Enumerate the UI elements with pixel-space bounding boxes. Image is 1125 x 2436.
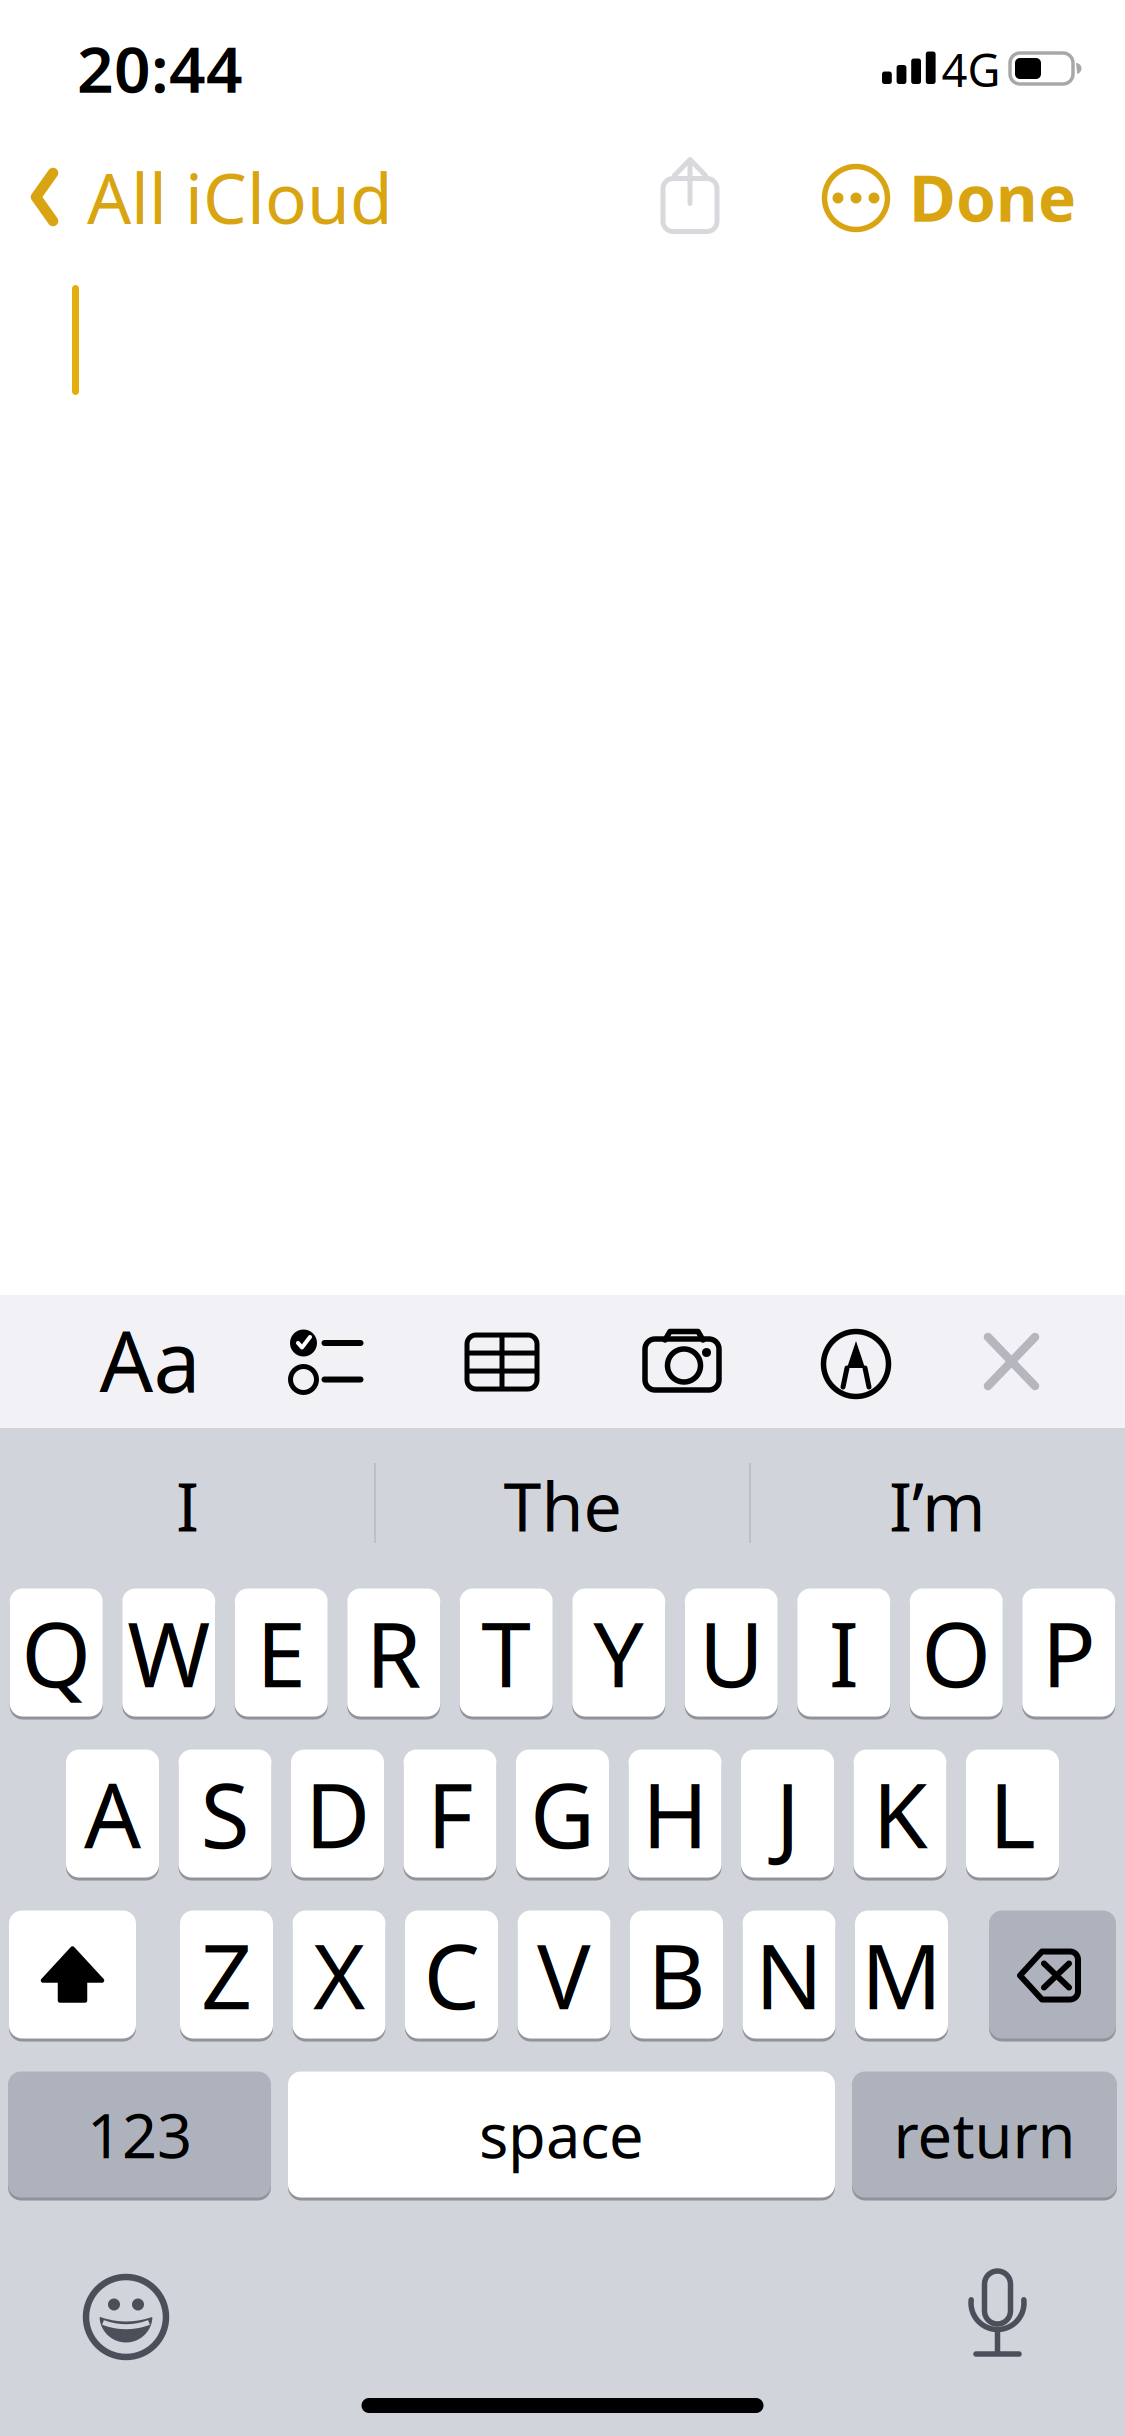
staticText: 123 (87, 2094, 192, 2175)
staticText: N (755, 1915, 823, 2034)
button[interactable]: Format (90, 1305, 210, 1415)
button[interactable]: P (1022, 1587, 1115, 1718)
staticText: L (989, 1754, 1036, 1873)
button[interactable]: A (66, 1748, 159, 1879)
button[interactable]: W (122, 1587, 215, 1718)
button[interactable]: More (821, 163, 891, 233)
staticText: M (861, 1915, 942, 2034)
button[interactable]: O (910, 1587, 1003, 1718)
staticText: V (537, 1915, 591, 2034)
button[interactable]: The (377, 1430, 747, 1580)
button[interactable]: I’m (752, 1430, 1122, 1580)
button[interactable]: Checklist (287, 1324, 375, 1398)
button[interactable]: Numbers (8, 2070, 271, 2199)
button[interactable]: Emoji (76, 2267, 176, 2367)
button[interactable]: J (741, 1748, 834, 1879)
staticText: space (479, 2094, 644, 2175)
staticText: U (699, 1593, 764, 1712)
button[interactable]: C (405, 1909, 498, 2040)
staticText: R (366, 1593, 422, 1712)
staticText: The (503, 1460, 621, 1550)
button[interactable]: M (855, 1909, 948, 2040)
staticText: T (481, 1593, 531, 1712)
staticText: Y (593, 1593, 644, 1712)
staticText: P (1042, 1593, 1096, 1712)
staticText: K (872, 1754, 927, 1873)
button[interactable]: H (628, 1748, 721, 1879)
staticText: All iCloud (87, 151, 393, 243)
staticText: S (200, 1754, 249, 1873)
staticText: G (530, 1754, 595, 1873)
button[interactable]: Table (462, 1330, 542, 1394)
staticText: Done (909, 154, 1076, 239)
button[interactable]: U (685, 1587, 778, 1718)
staticText: Z (201, 1915, 252, 2034)
button[interactable]: N (742, 1909, 835, 2040)
staticText: I’m (889, 1460, 986, 1550)
button[interactable]: T (460, 1587, 553, 1718)
staticText: J (775, 1754, 799, 1873)
button[interactable]: Share (660, 156, 719, 235)
staticText: D (305, 1754, 370, 1873)
staticText: X (313, 1915, 365, 2034)
button[interactable]: F (403, 1748, 496, 1879)
button[interactable]: Dismiss keyboard (981, 1331, 1041, 1391)
button[interactable]: D (291, 1748, 384, 1879)
staticText: 4G (941, 39, 1000, 100)
staticText: Q (21, 1593, 91, 1712)
button[interactable]: Done (856, 155, 1076, 239)
staticText: O (921, 1593, 991, 1712)
button[interactable]: R (347, 1587, 440, 1718)
button[interactable]: return (852, 2070, 1117, 2199)
button[interactable]: Shift (9, 1909, 136, 2040)
button[interactable]: All iCloud (34, 155, 514, 239)
staticText: C (423, 1915, 479, 2034)
button[interactable]: I (2, 1430, 372, 1580)
button[interactable]: Q (10, 1587, 103, 1718)
staticText: F (427, 1754, 473, 1873)
staticText: E (256, 1593, 306, 1712)
staticText: A (84, 1754, 141, 1873)
button[interactable]: Delete (989, 1909, 1116, 2040)
button[interactable]: X (292, 1909, 385, 2040)
button[interactable]: Dictate (962, 2263, 1032, 2363)
button[interactable]: Y (572, 1587, 665, 1718)
button[interactable]: L (966, 1748, 1059, 1879)
button[interactable]: G (516, 1748, 609, 1879)
button[interactable]: Markup (818, 1326, 894, 1402)
staticText: I (829, 1593, 859, 1712)
button[interactable]: space (288, 2070, 835, 2199)
button[interactable]: S (178, 1748, 271, 1879)
staticText: I (176, 1460, 199, 1550)
staticText: 20:44 (77, 25, 243, 110)
button[interactable]: B (630, 1909, 723, 2040)
staticText: W (127, 1593, 210, 1712)
staticText: H (642, 1754, 708, 1873)
button[interactable]: E (235, 1587, 328, 1718)
button[interactable]: Camera (640, 1327, 724, 1395)
staticText: Aa (99, 1304, 200, 1416)
staticText: B (647, 1915, 705, 2034)
button[interactable]: Z (180, 1909, 273, 2040)
button[interactable]: V (517, 1909, 610, 2040)
staticText: return (893, 2094, 1075, 2175)
button[interactable]: I (797, 1587, 890, 1718)
button[interactable]: K (853, 1748, 946, 1879)
